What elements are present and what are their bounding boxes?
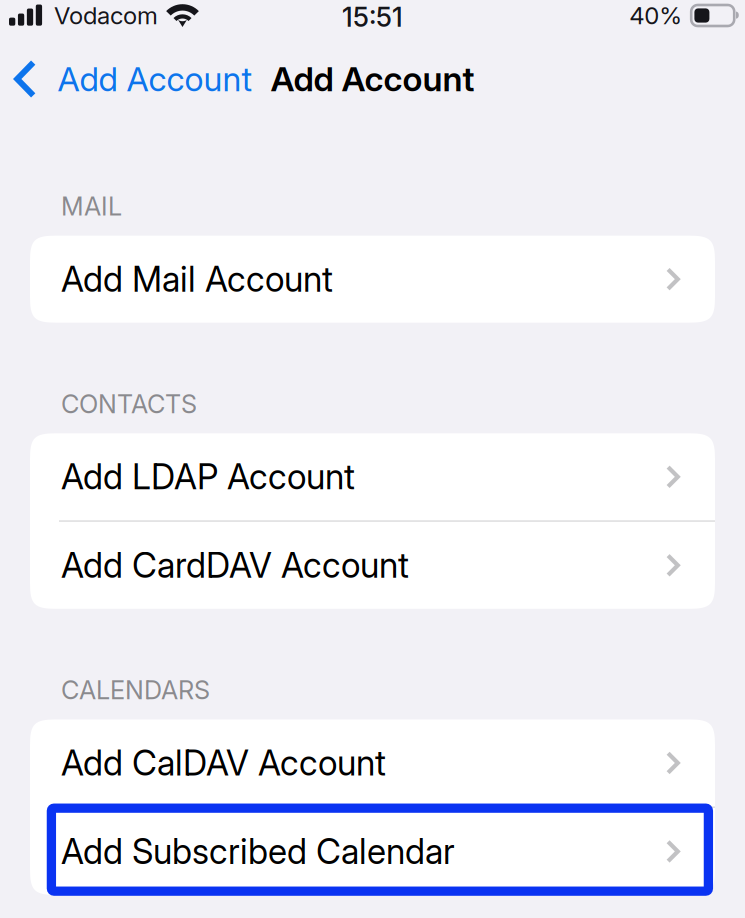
staticText: 15:51 [342, 1, 403, 33]
staticText: CALENDARS [61, 675, 210, 705]
staticText: 40% [629, 1, 682, 30]
button[interactable]: Add CardDAV Account [30, 522, 715, 609]
button[interactable]: Add CalDAV Account [30, 719, 715, 806]
staticText: MAIL [61, 191, 122, 222]
button[interactable]: Add LDAP Account [30, 433, 715, 520]
staticText: CONTACTS [61, 389, 197, 419]
button[interactable]: Add Account [0, 52, 266, 106]
staticText: Add LDAP Account [61, 456, 355, 498]
button[interactable]: Add Subscribed Calendar [30, 808, 715, 895]
staticText: Add CardDAV Account [61, 544, 409, 586]
staticText: Add CalDAV Account [61, 742, 386, 784]
staticText: Add Account [270, 58, 474, 99]
staticText: Add Subscribed Calendar [61, 831, 455, 872]
button[interactable]: Add Mail Account [30, 236, 715, 323]
staticText: Vodacom [54, 1, 158, 30]
staticText: Add Mail Account [61, 258, 333, 300]
staticText: Add Account [57, 59, 252, 99]
